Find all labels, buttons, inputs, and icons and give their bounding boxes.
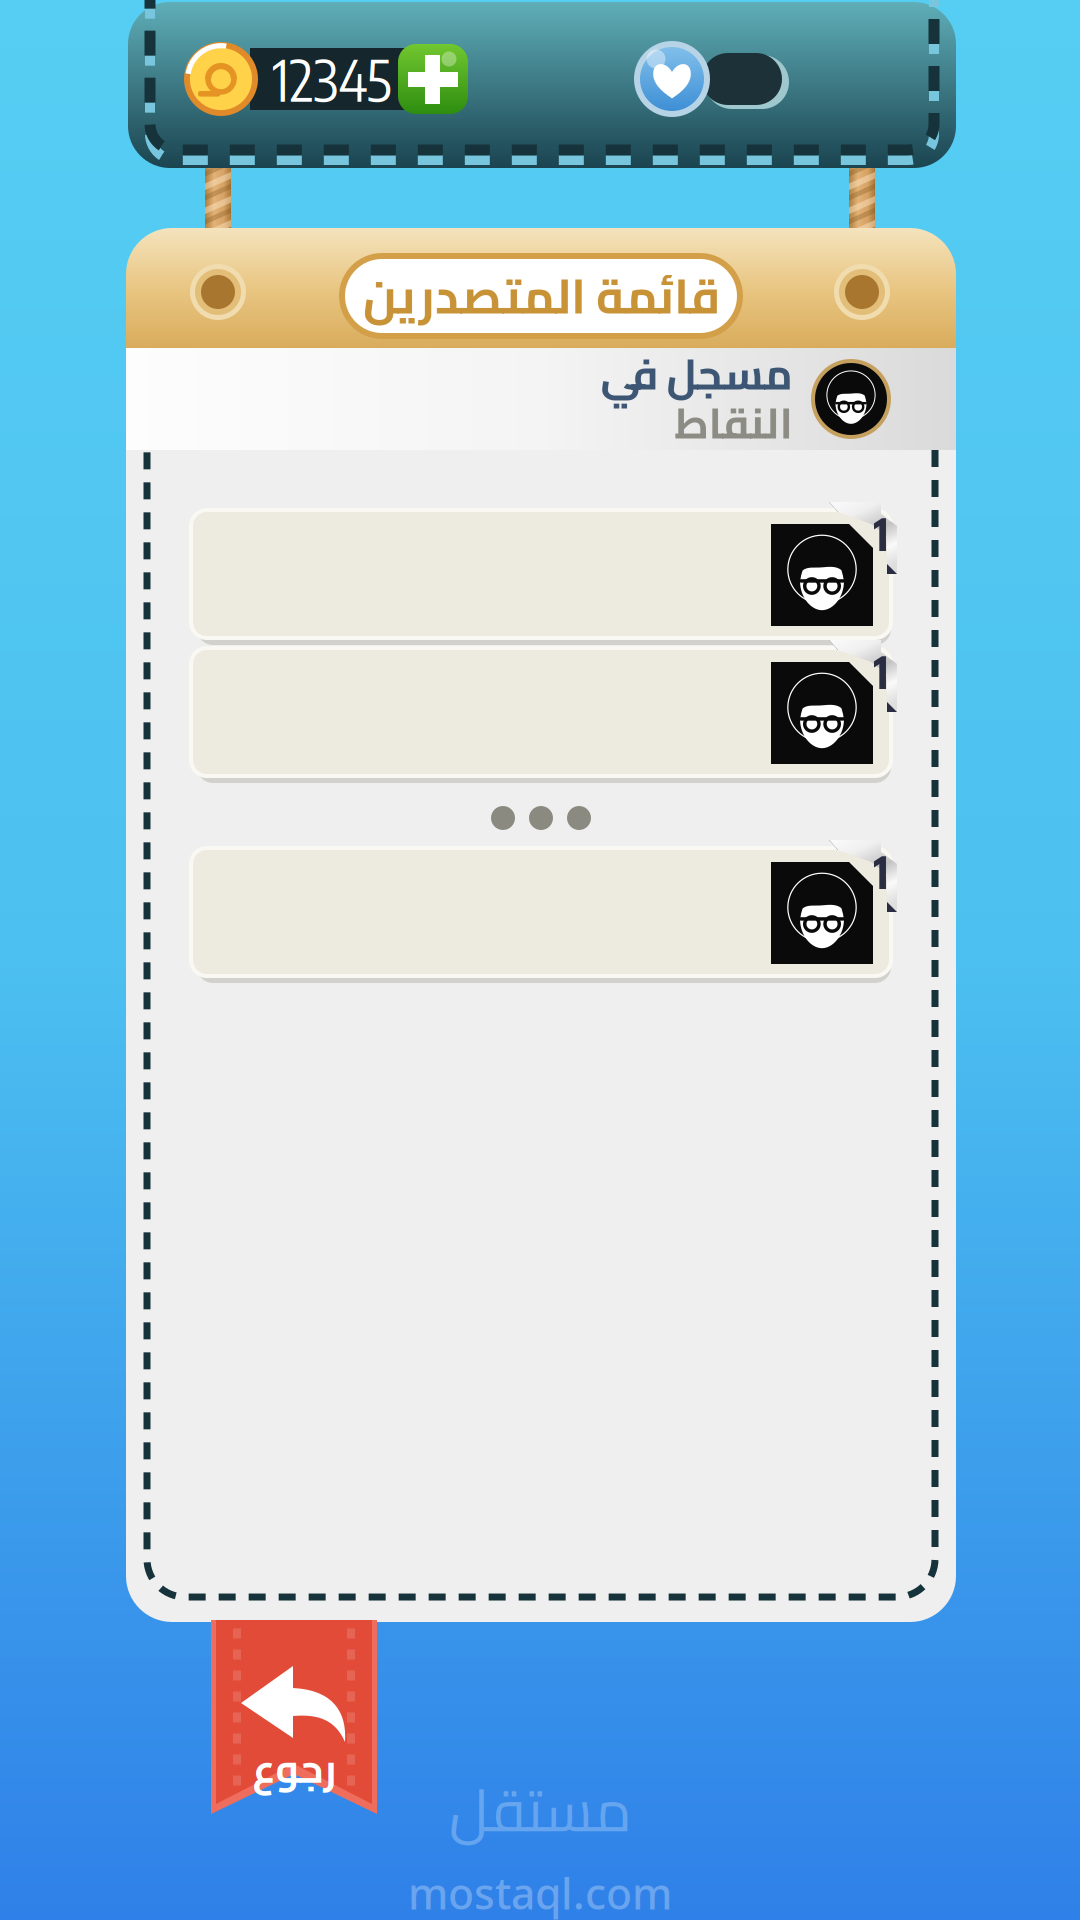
button[interactable]: 1 (171, 836, 911, 988)
staticText: 1 (873, 843, 888, 899)
button[interactable]: رجوع (211, 1620, 377, 1814)
staticText: رجوع (252, 1730, 336, 1805)
button[interactable]: 12345 (185, 36, 465, 122)
staticText: 1 (873, 643, 888, 699)
staticText: 1 (873, 505, 888, 561)
staticText: mostaql.com (408, 1865, 672, 1920)
button[interactable]: 1 (171, 636, 911, 788)
button[interactable]: Favorites (634, 41, 782, 117)
staticText: النقاط (674, 383, 792, 463)
staticText: مستقل (448, 1755, 631, 1865)
staticText: 12345 (272, 44, 391, 114)
staticText: مسجل في (600, 334, 792, 414)
staticText: قائمة المتصدرين (362, 251, 719, 341)
button[interactable]: 1 (171, 498, 911, 650)
